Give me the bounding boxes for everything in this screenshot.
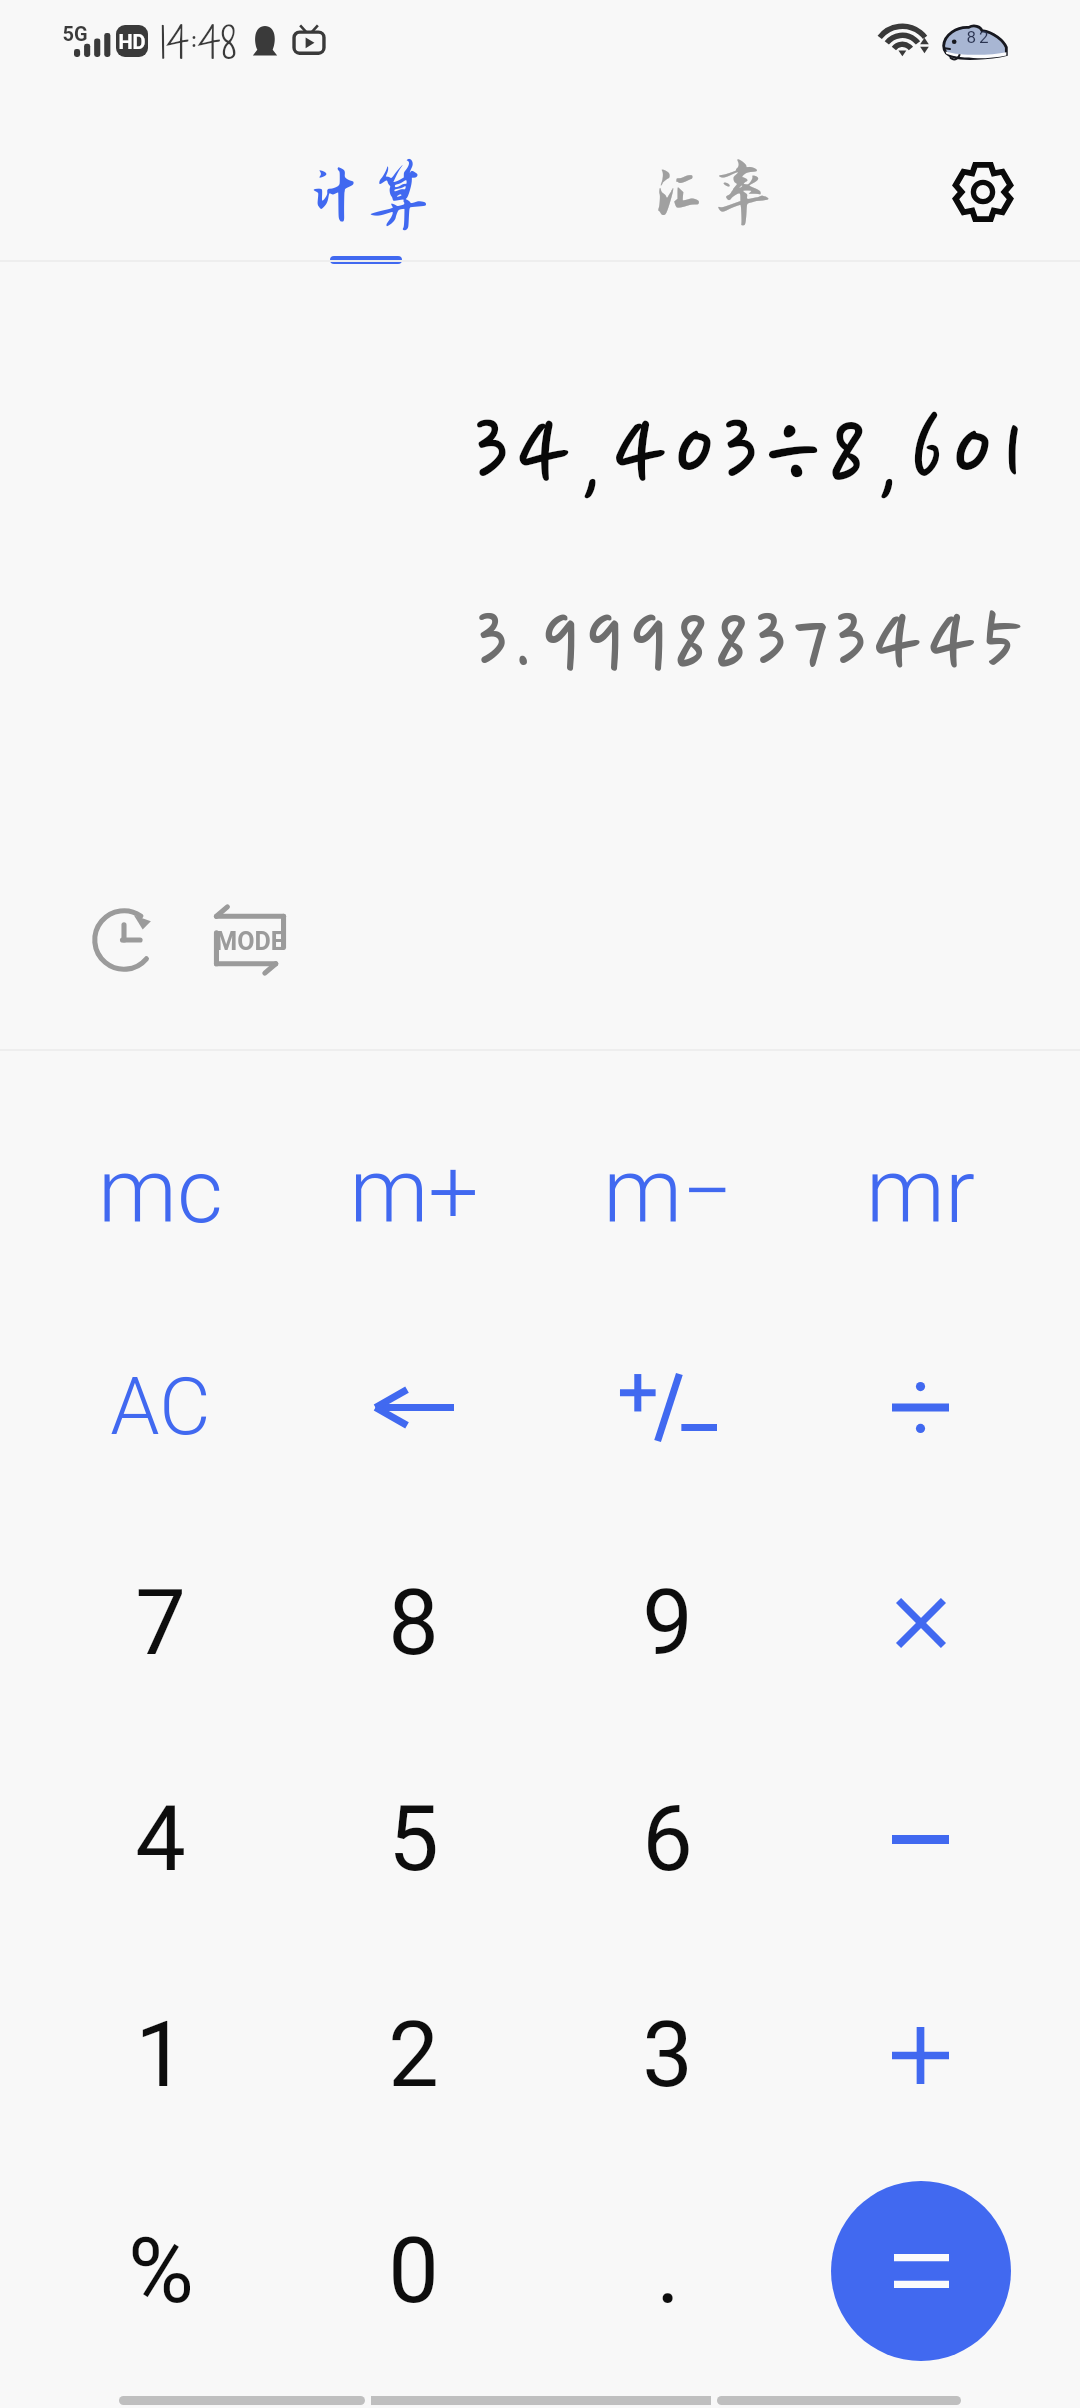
staticText: 4 bbox=[135, 1787, 186, 1892]
staticText: 0 bbox=[388, 2219, 439, 2324]
button[interactable]: 0 bbox=[287, 2163, 540, 2379]
staticText: 计算 bbox=[301, 160, 431, 232]
button[interactable]: 汇率 bbox=[571, 88, 851, 260]
button[interactable]: m+ bbox=[287, 1083, 540, 1299]
staticText: MODE bbox=[215, 927, 285, 956]
staticText: 6 bbox=[642, 1787, 693, 1892]
button[interactable]: Settings bbox=[927, 136, 1039, 248]
button[interactable]: 2 bbox=[287, 1947, 540, 2163]
staticText: 3 bbox=[642, 2003, 693, 2108]
staticText: 5 bbox=[388, 1787, 439, 1892]
staticText: 14:48 bbox=[160, 12, 236, 73]
staticText: 82 bbox=[966, 27, 992, 47]
button[interactable]: Mode bbox=[200, 890, 300, 990]
button[interactable]: % bbox=[34, 2163, 287, 2379]
staticText: m− bbox=[603, 1139, 733, 1243]
staticText: m+ bbox=[349, 1139, 479, 1243]
button[interactable]: 7 bbox=[34, 1515, 287, 1731]
staticText: HD bbox=[118, 30, 146, 53]
button[interactable]: 3 bbox=[541, 1947, 794, 2163]
button[interactable]: 1 bbox=[34, 1947, 287, 2163]
staticText: 2 bbox=[388, 2003, 439, 2108]
button[interactable]: Plus minus bbox=[541, 1299, 794, 1515]
button[interactable]: Equals bbox=[831, 2181, 1011, 2361]
button[interactable]: . bbox=[541, 2163, 794, 2379]
button[interactable]: 6 bbox=[541, 1731, 794, 1947]
staticText: mc bbox=[98, 1139, 223, 1243]
button[interactable]: Multiply bbox=[794, 1515, 1047, 1731]
staticText: % bbox=[128, 2219, 194, 2324]
button[interactable]: 4 bbox=[34, 1731, 287, 1947]
button[interactable]: 9 bbox=[541, 1515, 794, 1731]
staticText: . bbox=[656, 2219, 680, 2324]
button[interactable]: 计算 bbox=[226, 88, 506, 268]
button[interactable]: AC bbox=[34, 1299, 287, 1515]
button[interactable]: 8 bbox=[287, 1515, 540, 1731]
button[interactable]: Backspace bbox=[287, 1299, 540, 1515]
staticText: mr bbox=[866, 1139, 975, 1243]
button[interactable]: m− bbox=[541, 1083, 794, 1299]
staticText: 5G bbox=[62, 22, 88, 45]
button[interactable]: Divide bbox=[794, 1299, 1047, 1515]
button[interactable]: History bbox=[74, 890, 174, 990]
button[interactable]: mr bbox=[794, 1083, 1047, 1299]
button[interactable]: Subtract bbox=[794, 1731, 1047, 1947]
staticText: 3.99988373445 bbox=[477, 595, 1029, 695]
button[interactable]: 5 bbox=[287, 1731, 540, 1947]
button[interactable]: mc bbox=[34, 1083, 287, 1299]
staticText: 9 bbox=[642, 1571, 693, 1676]
staticText: 1 bbox=[135, 2003, 186, 2108]
staticText: 34,403÷8,601 bbox=[474, 399, 1032, 511]
staticText: 8 bbox=[388, 1571, 439, 1676]
button[interactable]: Add bbox=[794, 1947, 1047, 2163]
staticText: 汇率 bbox=[646, 158, 776, 230]
staticText: 7 bbox=[135, 1571, 186, 1676]
staticText: AC bbox=[110, 1361, 211, 1454]
